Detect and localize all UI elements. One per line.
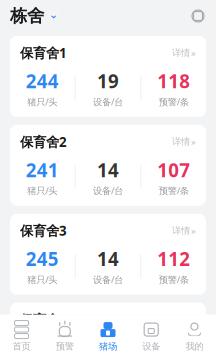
staticText: 预警	[56, 340, 74, 352]
staticText: 预警/条	[159, 95, 189, 108]
button[interactable]: 设备	[130, 316, 173, 357]
staticText: 14	[97, 335, 119, 360]
staticText: 详情	[172, 47, 190, 59]
staticText: 112	[157, 246, 190, 271]
staticText: 118	[157, 69, 190, 93]
staticText: 猪场	[99, 340, 117, 352]
staticText: 241	[26, 158, 59, 182]
button[interactable]: 详情	[172, 135, 196, 148]
staticText: 19	[97, 69, 119, 93]
staticText: 首页	[13, 340, 31, 352]
staticText: 设备/台	[93, 184, 123, 197]
staticText: 我的	[185, 340, 203, 352]
staticText: 242	[26, 335, 59, 360]
staticText: 猪只/头	[27, 184, 57, 197]
staticText: »	[191, 313, 196, 326]
button[interactable]: 猪场	[86, 316, 130, 357]
button[interactable]: 预警	[43, 316, 86, 357]
staticText: 14	[97, 246, 119, 271]
button[interactable]: 我的	[173, 316, 216, 357]
staticText: 244	[26, 69, 59, 93]
staticText: 预警/条	[159, 273, 189, 286]
button[interactable]: 栋舍	[10, 5, 59, 27]
staticText: 详情	[172, 136, 190, 147]
staticText: 107	[157, 158, 190, 182]
staticText: »	[191, 135, 196, 148]
button[interactable]: 首页	[0, 316, 43, 357]
staticText: 245	[26, 246, 59, 271]
staticText: 107	[157, 335, 190, 360]
staticText: 14	[97, 158, 119, 182]
staticText: 猪只/头	[27, 95, 57, 108]
staticText: 预警/条	[159, 184, 189, 197]
staticText: 详情	[172, 225, 190, 236]
staticText: 猪只/头	[27, 273, 57, 286]
button[interactable]: 详情	[172, 313, 196, 326]
staticText: »	[191, 47, 196, 59]
staticText: 保育舍1	[20, 44, 67, 62]
staticText: 设备	[142, 340, 160, 352]
staticText: 保育舍2	[20, 133, 67, 151]
staticText: 保育舍3	[20, 222, 67, 239]
staticText: ⌄	[49, 8, 58, 20]
button[interactable]: 详情	[172, 224, 196, 237]
staticText: »	[191, 224, 196, 237]
staticText: 设备/台	[93, 95, 123, 108]
staticText: 栋舍	[10, 5, 44, 27]
button[interactable]: 详情	[172, 47, 196, 59]
staticText: 保育舍4	[20, 311, 67, 328]
button[interactable]: 扫描	[190, 8, 206, 24]
staticText: 设备/台	[93, 273, 123, 286]
